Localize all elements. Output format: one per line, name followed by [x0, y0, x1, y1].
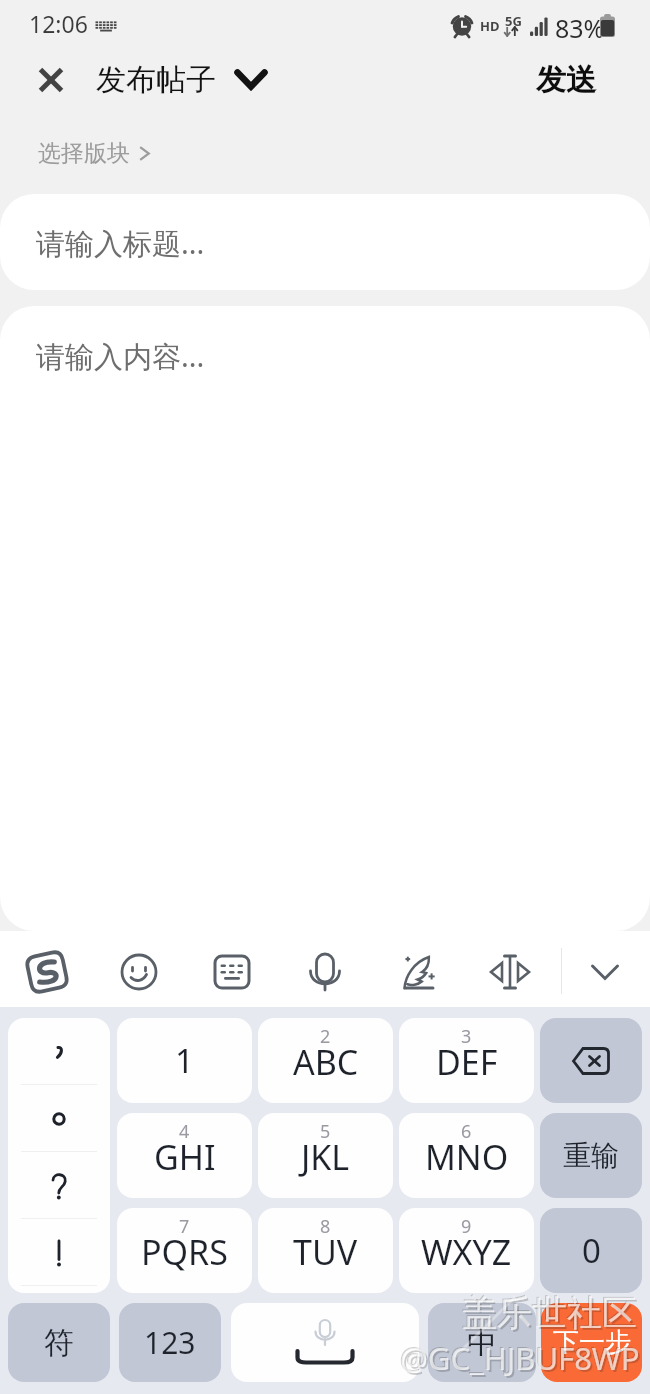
staticText: TUV — [293, 1229, 358, 1275]
button[interactable]: Voice input — [295, 942, 355, 1002]
button[interactable]: Close — [25, 54, 77, 106]
button[interactable]: 4 — [117, 1113, 252, 1198]
staticText: ABC — [293, 1039, 359, 1085]
button[interactable]: 2 — [258, 1018, 393, 1103]
staticText: 请输入内容... — [36, 336, 205, 376]
staticText: @GC_HJBUF8WP — [399, 1336, 639, 1378]
staticText: 选择版块 — [38, 139, 130, 168]
button[interactable]: 选择版块 — [38, 134, 150, 172]
button[interactable]: 3 — [399, 1018, 534, 1103]
staticText: DEF — [436, 1039, 498, 1085]
button[interactable]: 0 — [540, 1208, 642, 1293]
staticText: 盖乐世社区 — [464, 1293, 639, 1337]
staticText: JKL — [301, 1134, 350, 1180]
staticText: 12:06 — [29, 8, 88, 39]
button[interactable]: 重输 — [540, 1113, 642, 1198]
staticText: HD — [480, 17, 500, 35]
staticText: 盖乐世社区 — [461, 1290, 636, 1334]
button[interactable]: Keyboard — [202, 942, 262, 1002]
button[interactable]: 8 — [258, 1208, 393, 1293]
button[interactable] — [8, 1219, 110, 1286]
staticText: 下一步 — [553, 1326, 631, 1359]
button[interactable]: Emoji — [109, 942, 169, 1002]
staticText: GHI — [154, 1134, 216, 1180]
staticText: 重输 — [563, 1138, 619, 1173]
staticText: 符 — [44, 1324, 74, 1362]
staticText: 发送 — [536, 61, 596, 99]
button[interactable]: 请输入内容... — [0, 306, 650, 931]
button[interactable]: 7 — [117, 1208, 252, 1293]
button[interactable] — [8, 1085, 110, 1152]
button[interactable]: 符 — [8, 1303, 110, 1382]
staticText: 1 — [175, 1038, 194, 1083]
button[interactable] — [8, 1152, 110, 1219]
button[interactable]: 发布帖子 — [96, 54, 268, 106]
staticText: 发布帖子 — [96, 61, 216, 99]
button[interactable]: 发送 — [536, 54, 596, 106]
staticText: 请输入标题... — [36, 223, 205, 263]
button[interactable]: 请输入标题... — [0, 194, 650, 290]
button[interactable] — [8, 1018, 110, 1085]
staticText: 4 — [179, 1119, 190, 1144]
staticText: 2 — [320, 1024, 331, 1049]
staticText: 6 — [461, 1119, 472, 1144]
staticText: 中 — [467, 1324, 497, 1362]
staticText: WXYZ — [421, 1229, 512, 1275]
staticText: 123 — [144, 1322, 196, 1363]
staticText: 5 — [320, 1119, 331, 1144]
button[interactable]: 9 — [399, 1208, 534, 1293]
staticText: @GC_HJBUF8WP — [402, 1339, 642, 1381]
button[interactable]: Space — [231, 1303, 419, 1382]
button[interactable]: Backspace — [540, 1018, 642, 1103]
staticText: 盖乐世社区 — [462, 1291, 637, 1335]
button[interactable]: Hide keyboard — [575, 942, 635, 1002]
button[interactable]: 下一步 — [541, 1303, 642, 1382]
staticText: PQRS — [141, 1229, 228, 1275]
staticText: 7 — [179, 1214, 190, 1239]
staticText: MNO — [425, 1134, 509, 1180]
staticText: @GC_HJBUF8WP — [400, 1337, 640, 1379]
button[interactable]: 123 — [119, 1303, 221, 1382]
button[interactable]: 5 — [258, 1113, 393, 1198]
button[interactable]: 中 — [428, 1303, 536, 1382]
staticText: 3 — [461, 1024, 472, 1049]
button[interactable]: Sogou input — [17, 942, 77, 1002]
button[interactable]: Handwriting — [388, 942, 448, 1002]
staticText: 9 — [461, 1214, 472, 1239]
staticText: 83% — [555, 11, 605, 45]
button[interactable]: 6 — [399, 1113, 534, 1198]
button[interactable]: Move cursor — [480, 942, 540, 1002]
staticText: 8 — [320, 1214, 331, 1239]
staticText: 5G — [505, 12, 522, 30]
staticText: 0 — [582, 1228, 601, 1273]
button[interactable]: 1 — [117, 1018, 252, 1103]
